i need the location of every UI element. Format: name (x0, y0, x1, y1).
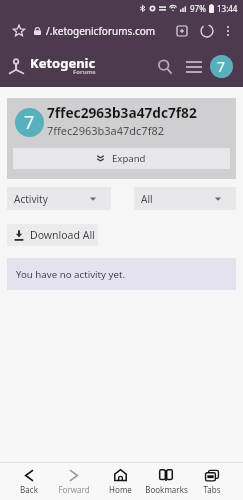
staticText: Activity (14, 192, 48, 206)
staticText: Tabs (203, 484, 221, 495)
button[interactable]: All (134, 187, 236, 210)
staticText: Bookmarks (145, 484, 188, 495)
staticText: 97% (190, 3, 206, 14)
button[interactable]: Bookmarks (143, 463, 189, 500)
button[interactable]: 7 (210, 55, 233, 78)
button[interactable]: Menu (180, 53, 208, 81)
staticText: Home (109, 484, 132, 495)
staticText: 7ffec2963b3a47dc7f82 (47, 103, 197, 122)
staticText: 7 (217, 57, 226, 76)
button[interactable]: Activity (7, 187, 111, 210)
staticText: /.ketogenicforums.com (46, 24, 156, 38)
button[interactable]: More options (218, 21, 238, 41)
staticText: Ketogenic (30, 54, 96, 72)
button[interactable]: Reload (197, 21, 217, 41)
staticText: All (141, 192, 153, 206)
button[interactable]: Home (97, 463, 143, 500)
staticText: Expand (112, 152, 146, 165)
staticText: Forums (73, 68, 96, 76)
button[interactable]: Download All (7, 224, 98, 246)
staticText: 7 (24, 110, 35, 135)
button[interactable]: Forward (51, 463, 97, 500)
button[interactable]: Expand (13, 148, 230, 169)
button[interactable]: Add to home screen (172, 21, 192, 41)
staticText: Forward (58, 484, 90, 495)
staticText: Download All (30, 228, 95, 242)
button[interactable]: Tabs (189, 463, 235, 500)
staticText: 13:44 (217, 3, 238, 14)
staticText: Back (20, 484, 38, 495)
button[interactable]: Back (6, 463, 51, 500)
button[interactable]: Search (150, 52, 180, 82)
button[interactable]: Bookmark (10, 22, 28, 40)
staticText: You have no activity yet. (16, 268, 126, 281)
staticText: 7ffec2963b3a47dc7f82 (47, 123, 165, 138)
